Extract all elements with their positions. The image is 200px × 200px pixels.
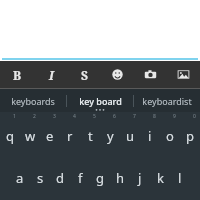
staticText: t: [88, 127, 93, 145]
staticText: a: [16, 169, 24, 187]
button[interactable]: g: [90, 156, 110, 200]
button[interactable]: s: [30, 156, 50, 200]
button[interactable]: d: [50, 156, 70, 200]
staticText: k: [157, 169, 164, 187]
staticText: i: [148, 127, 152, 145]
staticText: key board: [79, 95, 122, 107]
staticText: 9: [173, 113, 176, 120]
staticText: 6: [113, 113, 116, 120]
staticText: o: [166, 127, 174, 145]
staticText: 7: [133, 113, 136, 120]
staticText: B: [13, 67, 22, 83]
button[interactable]: 6: [100, 112, 120, 156]
staticText: e: [46, 127, 54, 145]
staticText: s: [37, 169, 44, 187]
button[interactable]: 2: [20, 112, 40, 156]
staticText: y: [107, 127, 114, 145]
button[interactable]: a: [10, 156, 30, 200]
staticText: g: [96, 169, 104, 187]
button[interactable]: h: [110, 156, 130, 200]
button[interactable]: 5: [80, 112, 100, 156]
button[interactable]: 0: [180, 112, 200, 156]
button[interactable]: Insert emoji: [101, 61, 134, 88]
button[interactable]: k: [150, 156, 170, 200]
button[interactable]: 7: [120, 112, 140, 156]
staticText: keyboardist: [142, 95, 192, 107]
staticText: S: [81, 67, 88, 83]
button[interactable]: 1: [0, 112, 20, 156]
button[interactable]: key board: [67, 89, 133, 112]
staticText: 1: [13, 113, 16, 120]
button[interactable]: Insert image: [167, 61, 200, 88]
button[interactable]: f: [70, 156, 90, 200]
staticText: r: [67, 127, 73, 145]
button[interactable]: 9: [160, 112, 180, 156]
staticText: w: [25, 127, 36, 145]
button[interactable]: B: [0, 61, 34, 88]
staticText: keyboards: [11, 95, 55, 107]
button[interactable]: S: [68, 61, 101, 88]
staticText: I: [49, 67, 54, 83]
staticText: f: [78, 169, 83, 187]
button[interactable]: 8: [140, 112, 160, 156]
button[interactable]: j: [130, 156, 150, 200]
staticText: 0: [193, 113, 196, 120]
button[interactable]: 4: [60, 112, 80, 156]
staticText: p: [186, 127, 194, 145]
staticText: 8: [153, 113, 156, 120]
staticText: 5: [93, 113, 96, 120]
staticText: q: [6, 127, 14, 145]
button[interactable]: l: [170, 156, 190, 200]
button[interactable]: keyboards: [0, 89, 66, 112]
staticText: h: [116, 169, 125, 187]
staticText: d: [56, 169, 64, 187]
staticText: u: [126, 127, 135, 145]
staticText: 2: [33, 113, 36, 120]
button[interactable]: 3: [40, 112, 60, 156]
button[interactable]: keyboardist: [134, 89, 200, 112]
staticText: 4: [73, 113, 76, 120]
staticText: j: [138, 169, 142, 187]
button[interactable]: Take photo: [134, 61, 167, 88]
button[interactable]: I: [34, 61, 68, 88]
staticText: 3: [53, 113, 56, 120]
staticText: l: [178, 169, 182, 187]
